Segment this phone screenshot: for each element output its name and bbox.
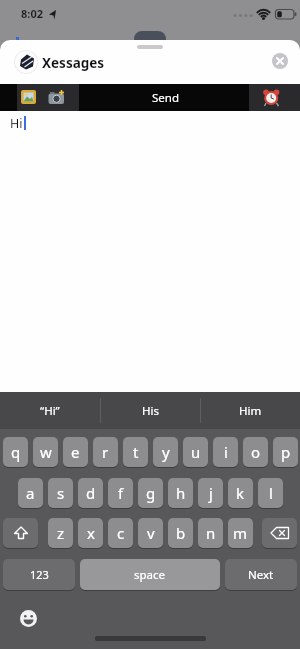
staticText: space — [134, 567, 166, 583]
staticText: Send — [152, 90, 179, 106]
button[interactable]: a — [18, 478, 43, 508]
staticText: Him — [239, 403, 262, 419]
button[interactable]: h — [168, 478, 193, 508]
staticText: a — [26, 483, 35, 503]
staticText: Xessages — [42, 54, 105, 72]
button[interactable]: t — [123, 437, 148, 467]
button[interactable]: f — [108, 478, 133, 508]
staticText: s — [57, 483, 65, 503]
button[interactable] — [263, 89, 280, 107]
button[interactable]: n — [198, 518, 223, 548]
staticText: “Hi” — [40, 403, 60, 419]
button[interactable]: Send — [110, 84, 220, 111]
staticText: j — [209, 483, 213, 503]
button[interactable]: i — [213, 437, 238, 467]
staticText: Next — [248, 567, 274, 583]
button[interactable]: “Hi” — [0, 392, 100, 429]
button[interactable]: l — [258, 478, 283, 508]
staticText: His — [142, 403, 159, 419]
staticText: x — [87, 523, 95, 543]
button[interactable] — [21, 90, 37, 105]
staticText: y — [162, 442, 170, 462]
staticText: o — [251, 442, 261, 462]
button[interactable]: k — [228, 478, 253, 508]
button[interactable]: b — [168, 518, 193, 548]
staticText: e — [71, 442, 80, 462]
staticText: g — [146, 483, 156, 503]
staticText: h — [176, 483, 186, 503]
button[interactable]: x — [78, 518, 103, 548]
button[interactable]: g — [138, 478, 163, 508]
button[interactable]: e — [63, 437, 88, 467]
button[interactable]: c — [108, 518, 133, 548]
staticText: p — [281, 442, 291, 462]
button[interactable]: Him — [200, 392, 300, 429]
button[interactable]: w — [33, 437, 58, 467]
button[interactable]: q — [3, 437, 28, 467]
staticText: z — [57, 523, 65, 543]
button[interactable]: v — [138, 518, 163, 548]
button[interactable] — [262, 518, 297, 548]
staticText: m — [233, 523, 248, 543]
staticText: r — [102, 442, 109, 462]
staticText: l — [269, 483, 273, 503]
button[interactable]: j — [198, 478, 223, 508]
staticText: u — [191, 442, 201, 462]
button[interactable]: space — [80, 559, 220, 590]
button[interactable]: s — [48, 478, 73, 508]
button[interactable] — [48, 90, 65, 105]
button[interactable]: His — [100, 392, 200, 429]
button[interactable]: p — [273, 437, 298, 467]
button[interactable]: m — [228, 518, 253, 548]
button[interactable] — [19, 609, 38, 628]
staticText: d — [86, 483, 96, 503]
staticText: q — [11, 442, 21, 462]
staticText: 8:02 — [21, 6, 43, 21]
staticText: 123 — [30, 567, 49, 582]
staticText: v — [147, 523, 155, 543]
button[interactable] — [272, 53, 288, 69]
staticText: c — [117, 523, 125, 543]
button[interactable]: u — [183, 437, 208, 467]
button[interactable]: y — [153, 437, 178, 467]
button[interactable]: r — [93, 437, 118, 467]
staticText: i — [224, 442, 228, 462]
button[interactable] — [3, 518, 38, 548]
button[interactable]: d — [78, 478, 103, 508]
staticText: n — [206, 523, 216, 543]
button[interactable]: 123 — [3, 559, 75, 590]
staticText: w — [40, 442, 52, 462]
staticText: k — [236, 483, 245, 503]
staticText: f — [118, 483, 124, 503]
staticText: t — [133, 442, 139, 462]
staticText: Hi — [10, 115, 23, 132]
button[interactable]: Next — [225, 559, 297, 590]
button[interactable]: z — [48, 518, 73, 548]
button[interactable]: o — [243, 437, 268, 467]
staticText: b — [176, 523, 186, 543]
